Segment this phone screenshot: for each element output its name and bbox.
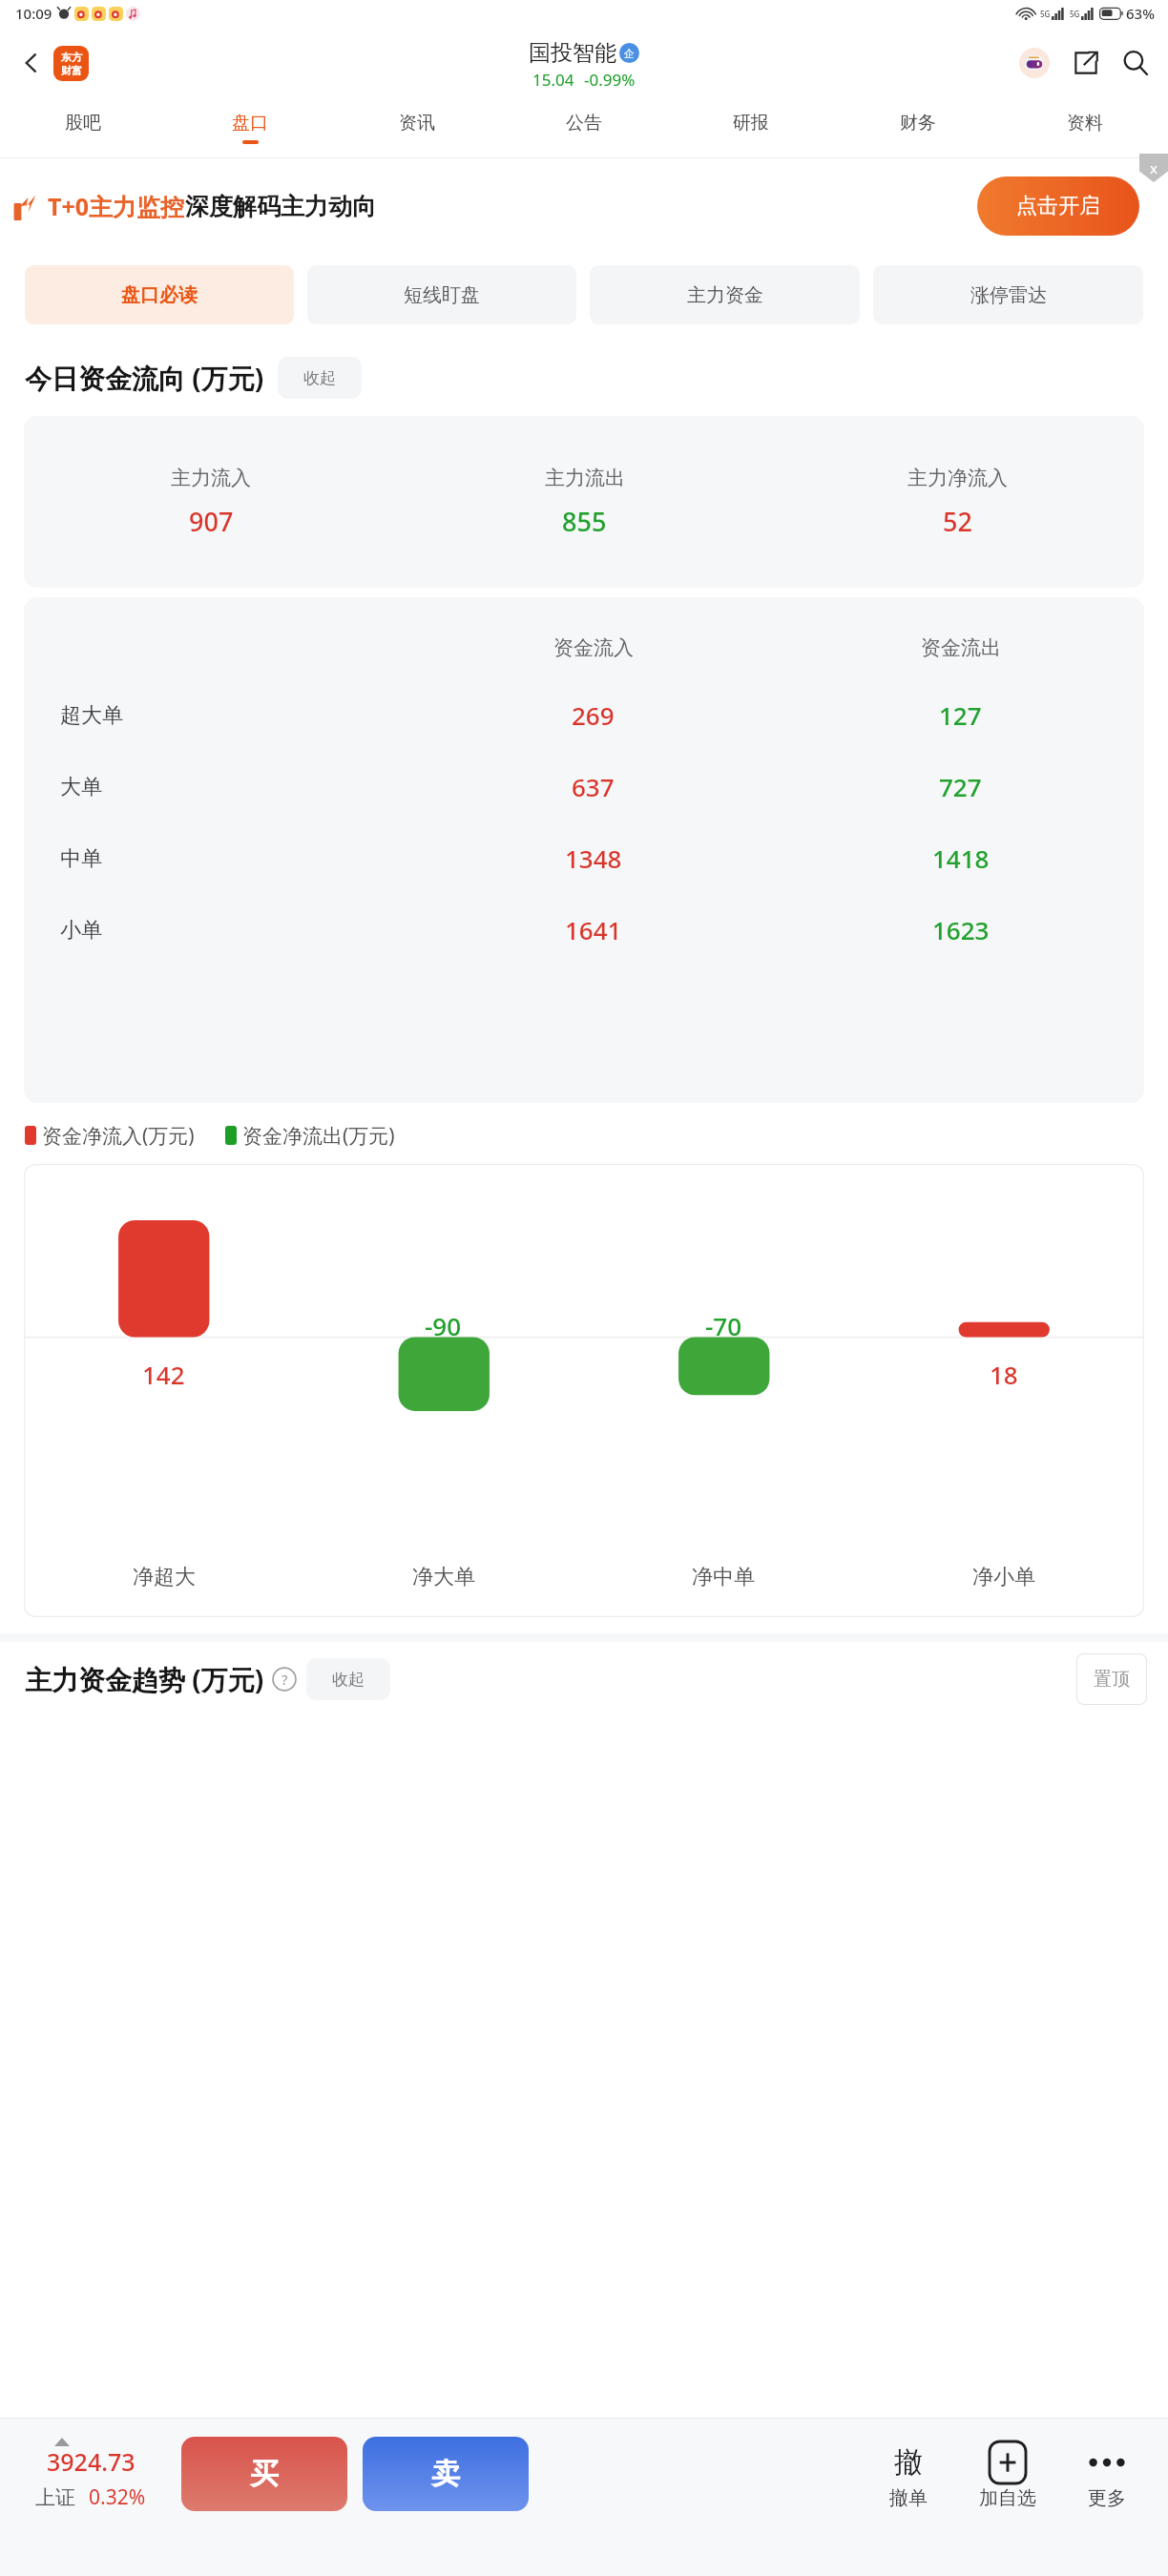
staticText: 3924.73 [47,2445,136,2478]
button[interactable]: 资讯 [333,98,500,157]
staticText: 卖 [431,2456,460,2492]
staticText: 资金净流出(万元) [242,1122,395,1150]
staticText: 中单 [60,845,102,872]
button[interactable]: 卖 [363,2437,529,2511]
button[interactable]: T+0主力监控 [13,190,376,222]
staticText: 净大单 [412,1564,475,1590]
staticText: 国投智能 [529,39,616,67]
button[interactable]: Back [10,41,53,85]
staticText: 公告 [566,112,602,135]
staticText: 企 [624,47,635,60]
button[interactable]: 置顶 [1076,1653,1147,1705]
staticText: 10:09 [15,4,52,23]
staticText: 52 [943,504,972,539]
staticText: 主力流入 [171,466,251,490]
staticText: 净超大 [133,1564,196,1590]
button[interactable]: Help [272,1667,297,1692]
button[interactable]: 盘口 [166,98,333,157]
staticText: x [1150,158,1158,177]
button[interactable]: 点击开启 [977,177,1139,236]
staticText: 撤单 [889,2486,928,2510]
staticText: 今日资金流向 (万元) [25,360,264,396]
button[interactable]: 研报 [667,98,834,157]
button[interactable]: 收起 [306,1658,390,1700]
staticText: 907 [189,504,234,539]
staticText: 大单 [60,774,102,800]
staticText: 资讯 [399,112,435,135]
staticText: 18 [990,1358,1018,1391]
button[interactable]: 主力资金 [590,265,860,324]
staticText: 涨停雷达 [970,283,1047,307]
button[interactable]: 撤 [859,2439,958,2510]
staticText: 财务 [900,112,936,135]
staticText: 637 [572,770,615,803]
staticText: 资金流入 [553,635,634,660]
staticText: 资金流出 [921,635,1001,660]
button[interactable]: Close [1139,154,1168,182]
staticText: 1348 [565,841,622,875]
button[interactable]: 盘口必读 [25,265,294,324]
button[interactable]: 财务 [834,98,1001,157]
staticText: 269 [572,698,615,732]
staticText: 净中单 [692,1564,755,1590]
staticText: -0.99% [584,69,636,91]
button[interactable]: 股吧 [0,98,166,157]
button[interactable]: AI assistant [1013,42,1055,84]
button[interactable]: 资料 [1001,98,1168,157]
button[interactable]: 更多 [1057,2439,1157,2510]
staticText: 股吧 [65,112,101,135]
staticText: 5G [1070,9,1080,19]
staticText: 63% [1126,4,1155,23]
staticText: 142 [142,1358,185,1391]
staticText: 主力资金趋势 (万元) [25,1661,264,1697]
staticText: 盘口 [232,112,268,135]
staticText: -90 [425,1309,462,1342]
staticText: 东方 [61,51,82,64]
staticText: 0.32% [89,2483,146,2511]
staticText: 撤 [894,2444,923,2481]
button[interactable]: 买 [181,2437,347,2511]
staticText: 上证 [35,2485,75,2510]
staticText: 深度解码主力动向 [185,192,376,221]
staticText: 主力资金 [687,283,763,307]
button[interactable]: 收起 [278,357,362,399]
staticText: 置顶 [1094,1668,1130,1691]
staticText: -70 [705,1309,742,1342]
staticText: 超大单 [60,702,123,729]
staticText: 净小单 [972,1564,1035,1590]
staticText: 短线盯盘 [404,283,480,307]
staticText: 主力净流入 [907,466,1008,490]
staticText: 收起 [303,368,336,388]
staticText: 小单 [60,917,102,944]
staticText: 点击开启 [1016,193,1100,219]
staticText: 727 [939,770,982,803]
staticText: 财富 [61,64,82,77]
staticText: T+0主力监控 [48,190,185,222]
staticText: 加自选 [979,2486,1036,2510]
staticText: 1418 [932,841,990,875]
button[interactable]: Search [1115,42,1157,84]
button[interactable]: 涨停雷达 [873,265,1143,324]
staticText: 1641 [565,913,622,946]
staticText: 资金净流入(万元) [42,1122,195,1150]
button[interactable]: 公告 [500,98,667,157]
staticText: 收起 [332,1670,365,1690]
staticText: ? [282,1670,288,1689]
staticText: 研报 [733,112,769,135]
button[interactable]: Share [1065,42,1107,84]
staticText: 5G [1040,9,1051,19]
staticText: 855 [562,504,607,539]
staticText: 更多 [1088,2486,1126,2510]
staticText: 15.04 [532,69,574,91]
button[interactable]: 加自选 [958,2439,1057,2510]
button[interactable]: 短线盯盘 [307,265,576,324]
staticText: 1623 [932,913,990,946]
button[interactable]: East Money [53,46,89,81]
staticText: 买 [250,2456,279,2492]
staticText: 主力流出 [545,466,625,490]
staticText: 资料 [1067,112,1103,135]
staticText: 127 [939,698,982,732]
staticText: 盘口必读 [121,283,198,307]
